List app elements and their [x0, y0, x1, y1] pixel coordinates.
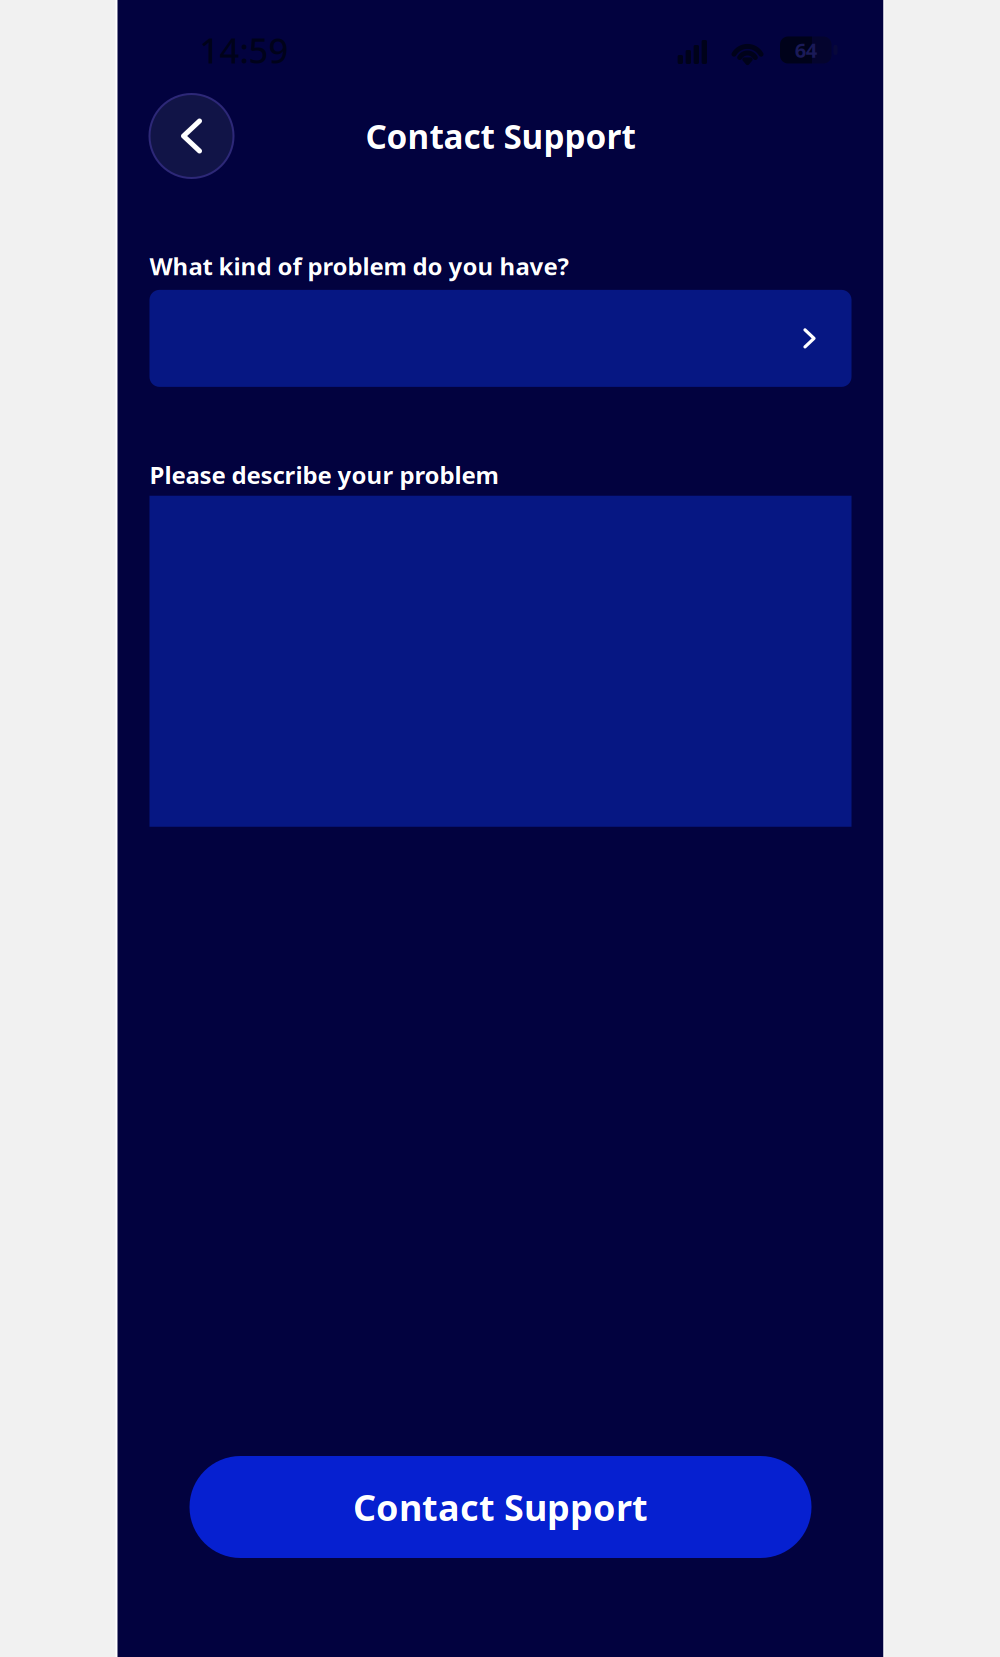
staticText: 14:59 [199, 27, 288, 73]
button[interactable]: Contact Support [189, 1456, 811, 1558]
staticText: Contact Support [353, 1483, 648, 1531]
staticText: 64 [795, 37, 817, 63]
staticText: Please describe your problem [149, 459, 498, 491]
button[interactable]: Select problem type [149, 290, 851, 387]
staticText: What kind of problem do you have? [149, 250, 568, 282]
staticText: Contact Support [365, 114, 635, 158]
button[interactable]: Back [149, 94, 233, 178]
